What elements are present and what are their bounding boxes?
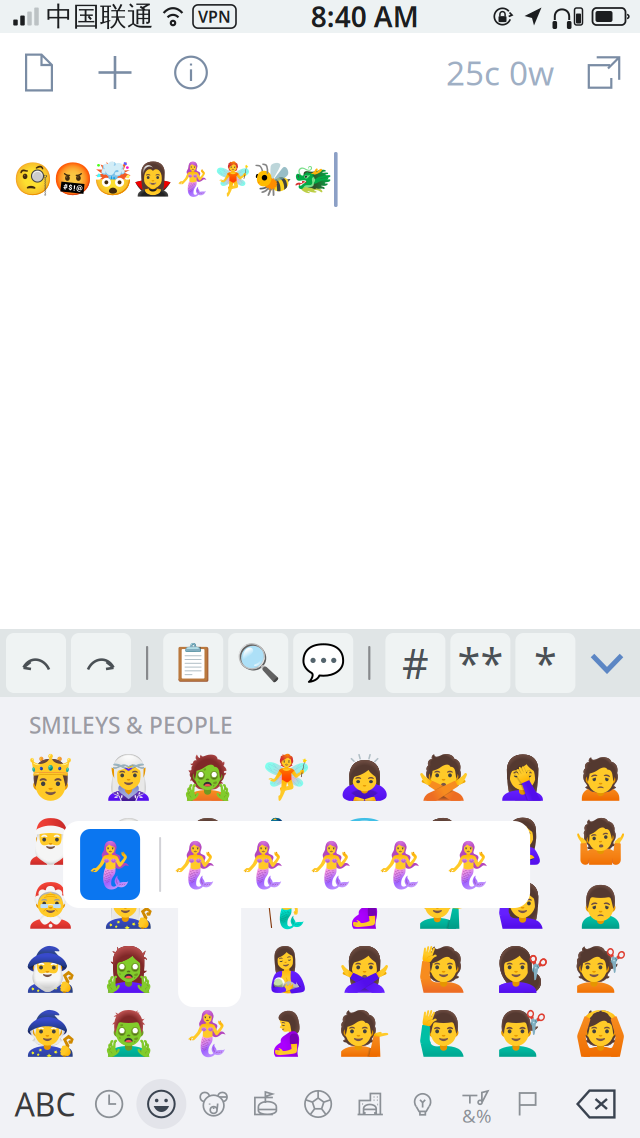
- staticText: 🙋: [417, 945, 470, 994]
- staticText: 🧜‍♀️: [181, 1009, 234, 1057]
- button[interactable]: Food and drink: [240, 1078, 292, 1130]
- staticText: 🎅: [24, 817, 77, 866]
- button[interactable]: ABC: [14, 1076, 76, 1132]
- button[interactable]: Animals and nature: [187, 1078, 240, 1130]
- button[interactable]: Smileys and people: [135, 1078, 187, 1130]
- button[interactable]: Emoji: [90, 810, 168, 874]
- button[interactable]: Emoji: [561, 874, 640, 937]
- staticText: 🧟‍♀️: [102, 945, 155, 994]
- button[interactable]: Bold: [450, 633, 510, 693]
- staticText: 🧛‍♀️: [181, 817, 234, 866]
- staticText: 🙎‍♀️: [495, 817, 548, 866]
- button[interactable]: Emoji: [325, 874, 404, 937]
- button[interactable]: Emoji: [483, 810, 561, 874]
- button[interactable]: Emoji: [168, 810, 247, 874]
- staticText: 🧚: [260, 753, 313, 802]
- button[interactable]: Emoji: [90, 874, 168, 937]
- button[interactable]: Emoji: [90, 1001, 168, 1065]
- button[interactable]: Flags: [501, 1078, 553, 1130]
- button[interactable]: New document: [10, 41, 68, 103]
- button[interactable]: Redo: [71, 633, 131, 693]
- staticText: 🙍‍♂️: [574, 881, 627, 930]
- staticText: 🙆: [574, 1009, 627, 1057]
- button[interactable]: Emoji: [90, 746, 168, 810]
- button[interactable]: Emoji: [404, 874, 483, 937]
- button[interactable]: Emoji: [404, 937, 483, 1001]
- staticText: 🤱: [260, 945, 313, 994]
- staticText: 🧐🤬🤯🧛‍♀️🧜‍♀️🧚🐝🐲: [13, 161, 333, 198]
- staticText: 🤷‍♀️: [417, 817, 470, 866]
- button[interactable]: Emoji: [404, 746, 483, 810]
- button[interactable]: Emoji: [11, 1001, 90, 1065]
- button[interactable]: Emoji: [11, 874, 90, 937]
- button[interactable]: Hide keyboard: [583, 633, 631, 693]
- button[interactable]: Emoji: [247, 937, 325, 1001]
- staticText: SMILEYS & PEOPLE: [29, 710, 233, 740]
- button[interactable]: Comment: [293, 633, 353, 693]
- staticText: 🙇‍♀️: [338, 753, 391, 802]
- button[interactable]: Info: [162, 41, 220, 103]
- button[interactable]: Emoji: [483, 1001, 561, 1065]
- button[interactable]: Emoji: [247, 810, 325, 874]
- button[interactable]: Delete: [571, 1078, 621, 1130]
- button[interactable]: Emoji: [483, 937, 561, 1001]
- button[interactable]: Add: [86, 41, 144, 103]
- button[interactable]: Emoji: [561, 1001, 640, 1065]
- button[interactable]: Emoji: [247, 746, 325, 810]
- staticText: *: [534, 636, 557, 690]
- button[interactable]: Paste: [163, 633, 223, 693]
- button[interactable]: Emoji: [11, 746, 90, 810]
- button[interactable]: Expand: [578, 41, 630, 103]
- button[interactable]: Emoji: [325, 746, 404, 810]
- button[interactable]: Emoji: [325, 1001, 404, 1065]
- button[interactable]: Undo: [6, 633, 66, 693]
- button[interactable]: Activity: [292, 1078, 344, 1130]
- staticText: 🧜‍♀️: [373, 839, 428, 890]
- staticText: 25c 0w: [446, 50, 554, 95]
- staticText: 中国联通: [46, 0, 154, 33]
- button[interactable]: Emoji: [561, 810, 640, 874]
- button[interactable]: Emoji: [325, 810, 404, 874]
- staticText: 💇‍♂️: [495, 1009, 548, 1057]
- button[interactable]: Emoji: [168, 1001, 247, 1065]
- staticText: 🤴: [24, 753, 77, 802]
- staticText: 🧝‍♂️: [102, 817, 155, 866]
- button[interactable]: Symbols: [449, 1078, 501, 1130]
- staticText: **: [457, 636, 503, 690]
- staticText: 🧜‍♂️: [260, 881, 313, 930]
- staticText: 🤦‍♀️: [495, 753, 548, 802]
- staticText: 🧜‍♀️: [441, 839, 496, 890]
- button[interactable]: Emoji: [404, 1001, 483, 1065]
- button[interactable]: Emoji: [11, 937, 90, 1001]
- button[interactable]: Emoji: [561, 937, 640, 1001]
- staticText: 🙅: [417, 753, 470, 802]
- button[interactable]: Travel and places: [344, 1078, 396, 1130]
- button[interactable]: Emoji: [247, 874, 325, 937]
- button[interactable]: Emoji: [168, 874, 247, 937]
- button[interactable]: Emoji: [168, 746, 247, 810]
- staticText: 🧜‍♀️: [304, 839, 359, 890]
- staticText: 🙍: [574, 753, 627, 802]
- staticText: 💇‍♀️: [495, 945, 548, 994]
- button[interactable]: Emoji: [483, 746, 561, 810]
- staticText: 💇: [574, 945, 627, 994]
- button[interactable]: Italic: [515, 633, 575, 693]
- button[interactable]: Heading: [385, 633, 445, 693]
- staticText: 🧙: [24, 1009, 77, 1057]
- button[interactable]: Objects: [396, 1078, 449, 1130]
- button[interactable]: Emoji: [325, 937, 404, 1001]
- button[interactable]: Search: [228, 633, 288, 693]
- button[interactable]: Emoji: [483, 874, 561, 937]
- button[interactable]: Recently used: [83, 1078, 135, 1130]
- button[interactable]: Emoji: [11, 810, 90, 874]
- button[interactable]: Emoji: [168, 937, 247, 1001]
- staticText: 🤶: [24, 881, 77, 930]
- staticText: 🧙‍♂️: [24, 945, 77, 994]
- staticText: 🧛: [181, 881, 234, 930]
- button[interactable]: Emoji: [561, 746, 640, 810]
- button[interactable]: Emoji: [247, 1001, 325, 1065]
- button[interactable]: Emoji: [90, 937, 168, 1001]
- staticText: 🤰: [260, 1009, 313, 1057]
- button[interactable]: Emoji: [404, 810, 483, 874]
